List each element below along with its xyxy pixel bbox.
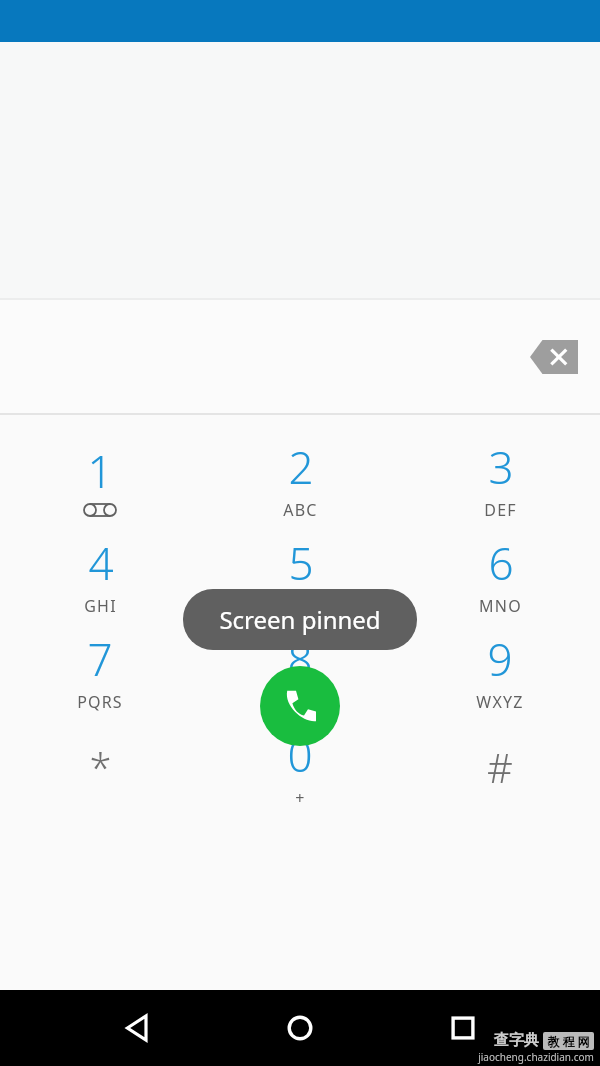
- button[interactable]: Home: [268, 996, 332, 1060]
- button[interactable]: Call: [260, 666, 340, 746]
- button[interactable]: *: [0, 719, 200, 815]
- button[interactable]: 3: [400, 431, 600, 527]
- staticText: 3: [488, 437, 514, 497]
- staticText: +: [295, 787, 306, 809]
- button[interactable]: 1: [0, 431, 200, 527]
- staticText: DEF: [484, 499, 517, 521]
- staticText: 9: [487, 629, 513, 689]
- staticText: 查字典: [494, 1031, 539, 1050]
- staticText: 4: [88, 533, 114, 593]
- staticText: *: [89, 740, 112, 794]
- staticText: JKL: [287, 595, 314, 617]
- staticText: PQRS: [77, 691, 123, 713]
- button[interactable]: Back: [105, 996, 169, 1060]
- staticText: 2: [288, 437, 314, 497]
- button[interactable]: 5: [200, 527, 400, 623]
- staticText: jiaocheng.chazidian.com: [478, 1050, 594, 1064]
- staticText: GHI: [84, 595, 117, 617]
- staticText: TUV: [283, 691, 317, 713]
- staticText: 0: [287, 725, 313, 785]
- staticText: MNO: [479, 595, 522, 617]
- staticText: 6: [488, 533, 514, 593]
- staticText: 8: [287, 629, 313, 689]
- staticText: 1: [87, 441, 113, 501]
- button[interactable]: Backspace: [526, 333, 582, 381]
- staticText: WXYZ: [476, 691, 524, 713]
- staticText: #: [487, 740, 513, 794]
- staticText: Screen pinned: [219, 603, 381, 636]
- button[interactable]: Recents: [431, 996, 495, 1060]
- button[interactable]: 7: [0, 623, 200, 719]
- button[interactable]: 4: [0, 527, 200, 623]
- button[interactable]: 6: [400, 527, 600, 623]
- button[interactable]: 8: [200, 623, 400, 719]
- button[interactable]: 0: [200, 719, 400, 815]
- staticText: ABC: [283, 499, 318, 521]
- button[interactable]: 9: [400, 623, 600, 719]
- button[interactable]: #: [400, 719, 600, 815]
- button[interactable]: 2: [200, 431, 400, 527]
- staticText: 教 程 网: [547, 1033, 590, 1049]
- staticText: 7: [87, 629, 113, 689]
- staticText: 5: [288, 533, 314, 593]
